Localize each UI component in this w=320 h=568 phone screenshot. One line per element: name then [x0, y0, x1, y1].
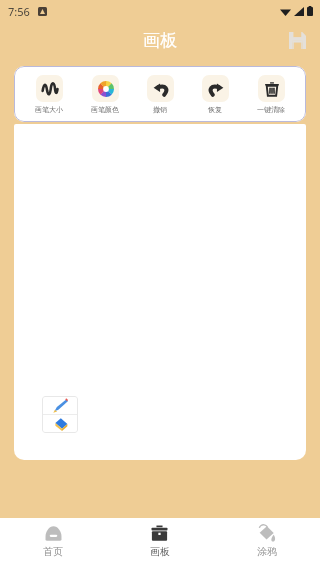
staticText: 撤销 [153, 105, 167, 114]
button[interactable]: 涂鸦 [213, 518, 320, 568]
button[interactable]: 一键清除 [245, 72, 297, 117]
button[interactable]: Drawing canvas [14, 124, 306, 460]
button[interactable]: 首页 [0, 518, 106, 568]
button[interactable]: 撤销 [134, 72, 186, 117]
staticText: 画笔大小 [35, 105, 63, 114]
button[interactable]: Pen [42, 396, 78, 414]
staticText: 画板 [150, 545, 170, 558]
button[interactable]: 恢复 [189, 72, 241, 117]
button[interactable]: 画笔大小 [23, 72, 75, 117]
staticText: 画笔颜色 [91, 105, 119, 114]
button[interactable]: Eraser [42, 415, 78, 433]
button[interactable]: 画板 [106, 518, 213, 568]
button[interactable]: Save [284, 27, 310, 53]
staticText: 首页 [43, 545, 63, 558]
staticText: 一键清除 [257, 105, 285, 114]
button[interactable]: 画笔颜色 [79, 72, 131, 117]
staticText: 恢复 [208, 105, 222, 114]
staticText: 涂鸦 [257, 545, 277, 558]
staticText: 画板 [143, 30, 177, 51]
staticText: 7:56 [8, 4, 30, 19]
